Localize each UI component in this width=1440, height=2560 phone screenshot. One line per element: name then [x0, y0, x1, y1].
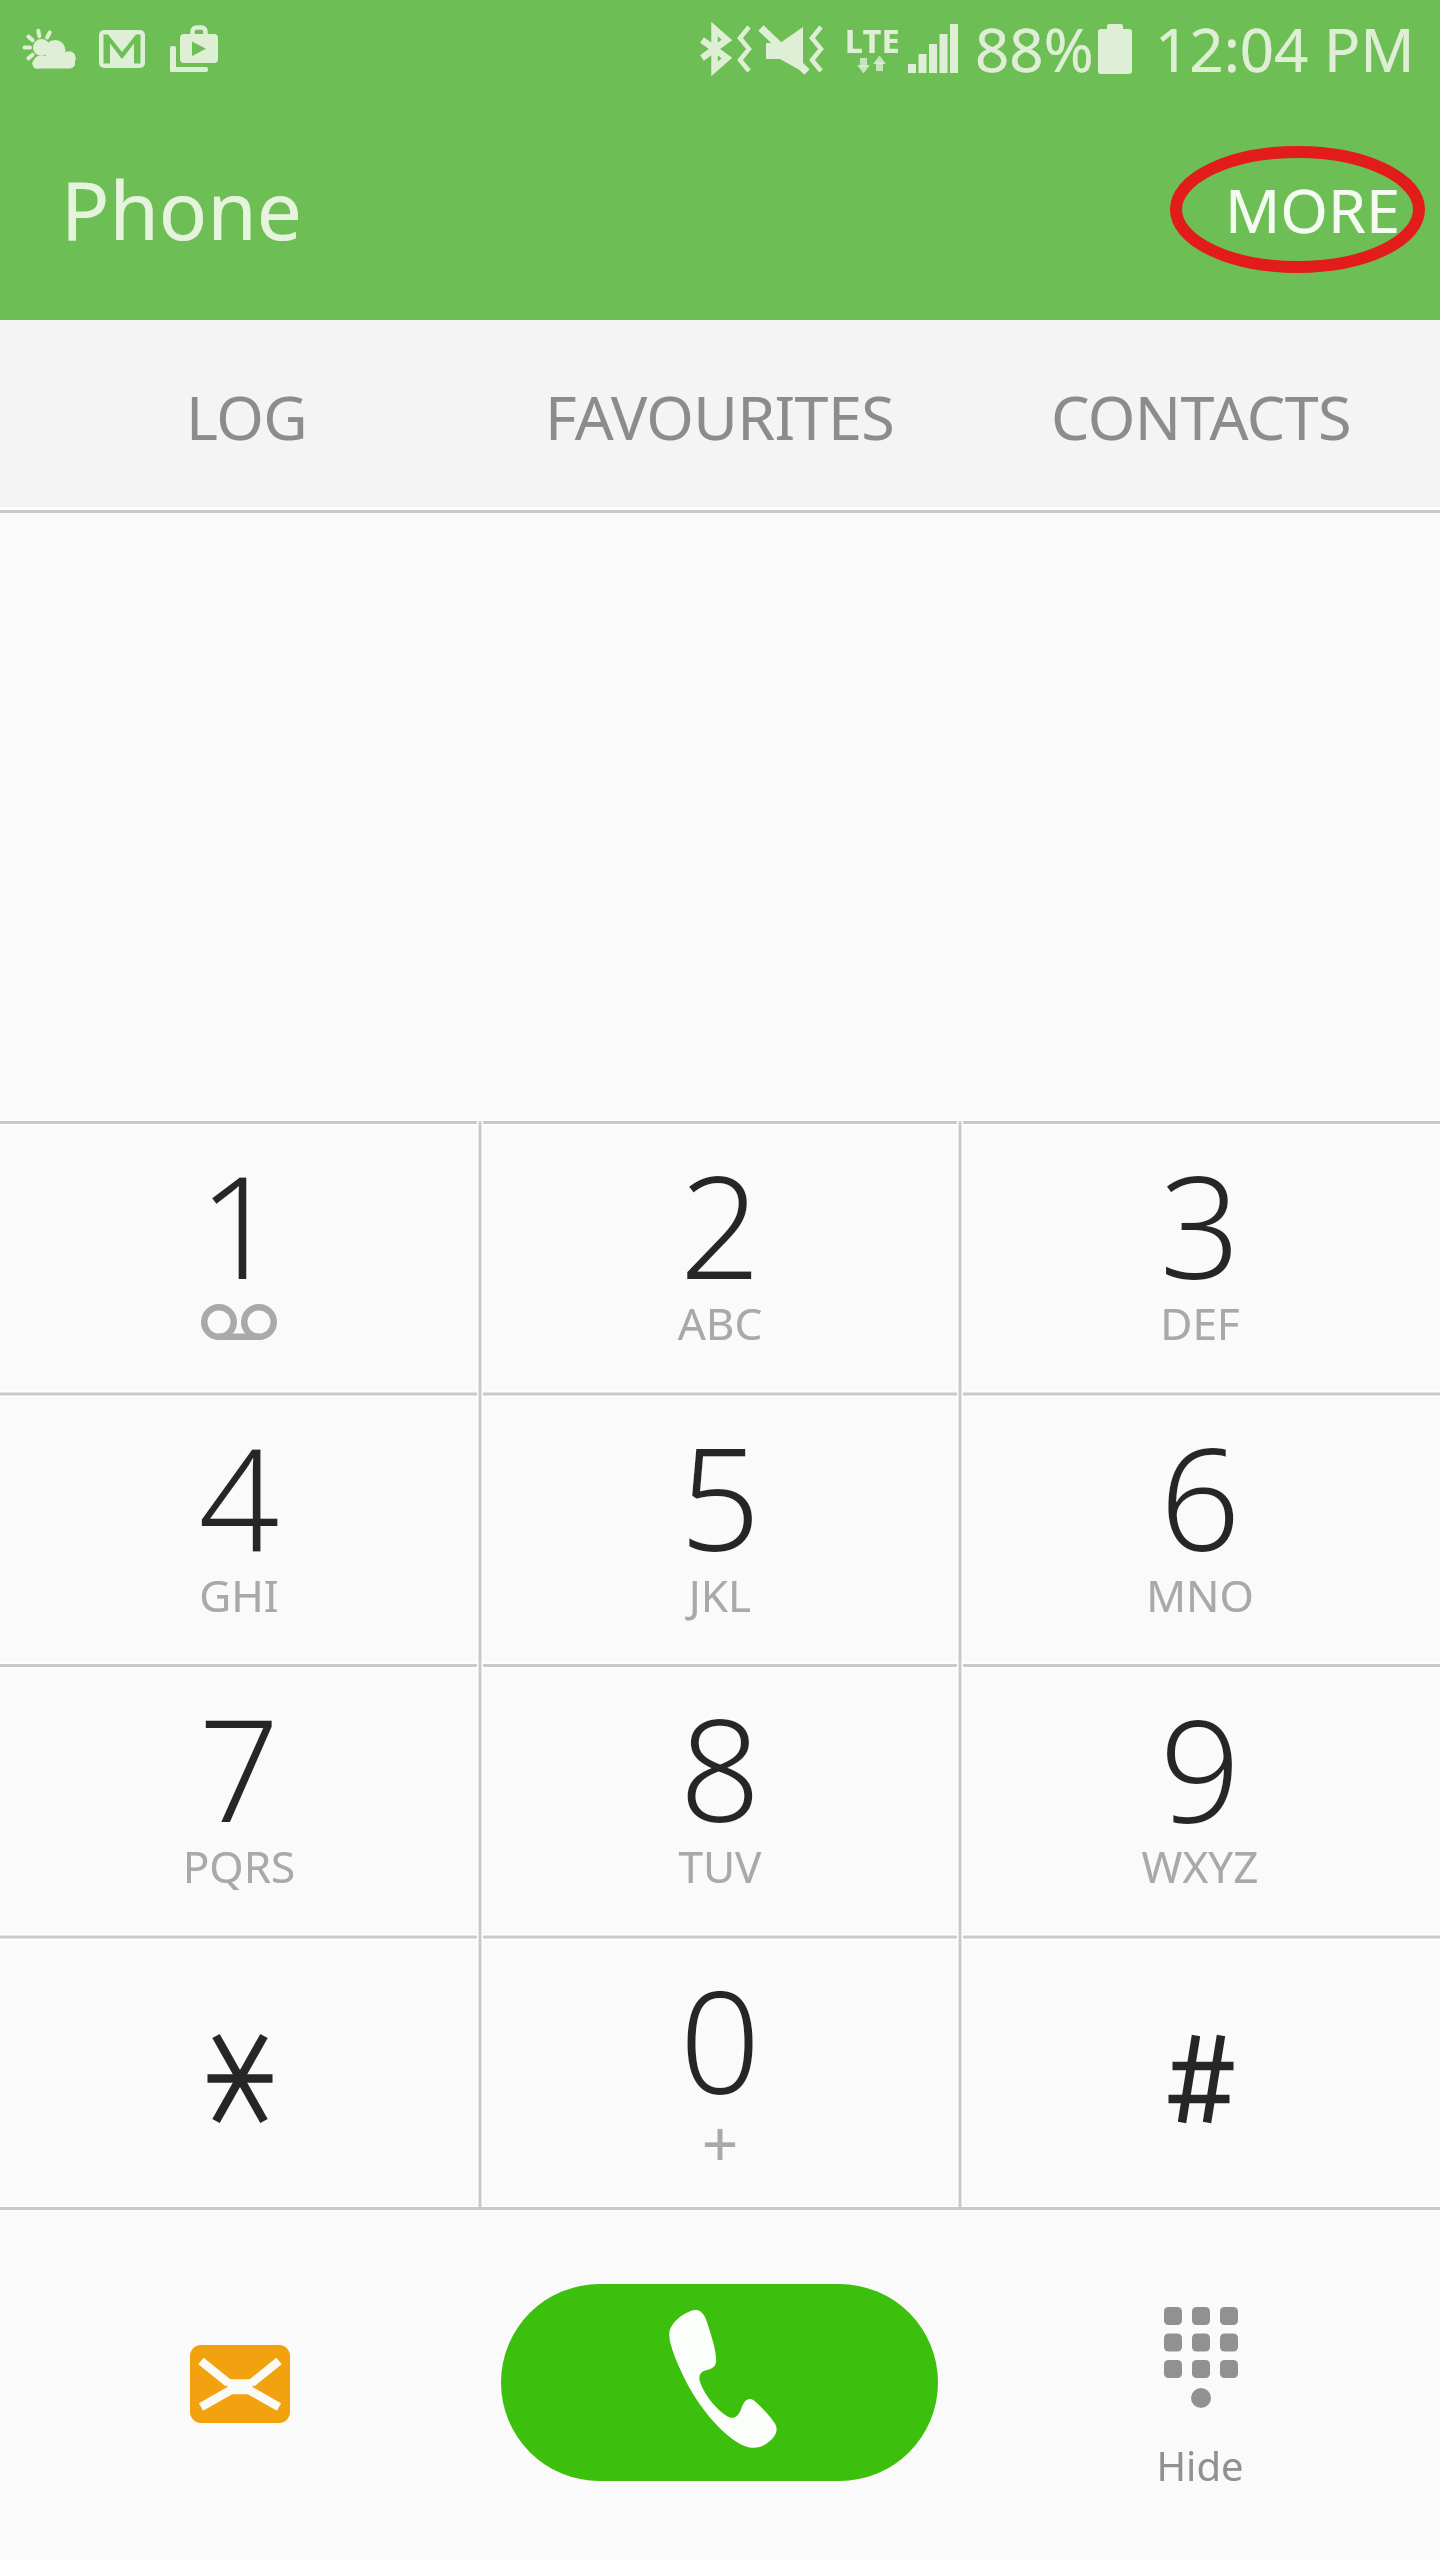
staticText: GHI	[0, 1565, 478, 1625]
staticText: DEF	[961, 1293, 1439, 1353]
button[interactable]: 2	[481, 1124, 959, 1393]
button[interactable]: 6	[961, 1396, 1439, 1665]
button[interactable]: 3	[961, 1124, 1439, 1393]
staticText: LOG	[186, 375, 307, 458]
staticText: 5	[481, 1399, 959, 1592]
staticText: CONTACTS	[1051, 375, 1351, 458]
staticText: TUV	[481, 1836, 959, 1896]
staticText: +	[481, 2099, 959, 2186]
button[interactable]: Call	[501, 2284, 938, 2481]
staticText: LTE	[845, 19, 901, 63]
button[interactable]: MORE	[1192, 148, 1432, 270]
staticText: 4	[0, 1399, 478, 1592]
button[interactable]: Send message	[80, 2234, 400, 2534]
staticText: MNO	[961, 1565, 1439, 1625]
staticText: 6	[961, 1399, 1439, 1592]
button[interactable]: 5	[481, 1396, 959, 1665]
staticText: ABC	[481, 1293, 959, 1353]
staticText: 88%	[975, 8, 1094, 90]
button[interactable]: FAVOURITES	[480, 320, 960, 512]
staticText: WXYZ	[961, 1836, 1439, 1896]
button[interactable]: LOG	[0, 320, 480, 512]
staticText: 7	[0, 1670, 478, 1863]
button[interactable]: 0	[481, 1939, 959, 2208]
staticText: JKL	[481, 1565, 959, 1625]
button[interactable]: 7	[0, 1667, 478, 1936]
staticText: FAVOURITES	[545, 375, 895, 458]
staticText: 0	[481, 1942, 959, 2135]
button[interactable]: CONTACTS	[960, 320, 1440, 512]
button[interactable]: 9	[961, 1667, 1439, 1936]
button[interactable]: 4	[0, 1396, 478, 1665]
staticText: 1	[0, 1127, 478, 1320]
button[interactable]: 1	[0, 1124, 478, 1393]
button[interactable]: Star	[0, 1939, 478, 2208]
staticText: 2	[481, 1127, 959, 1320]
staticText: Hide	[1060, 2438, 1340, 2492]
staticText: MORE	[1225, 168, 1400, 251]
staticText: 8	[481, 1670, 959, 1863]
button[interactable]: 8	[481, 1667, 959, 1936]
staticText: Phone	[61, 154, 302, 263]
button[interactable]: Hide keypad	[1060, 2250, 1340, 2530]
staticText: 3	[961, 1127, 1439, 1320]
staticText: 12:04 PM	[1155, 8, 1415, 90]
button[interactable]: Pound	[961, 1939, 1439, 2208]
staticText: 9	[961, 1670, 1439, 1863]
staticText: PQRS	[0, 1836, 478, 1896]
